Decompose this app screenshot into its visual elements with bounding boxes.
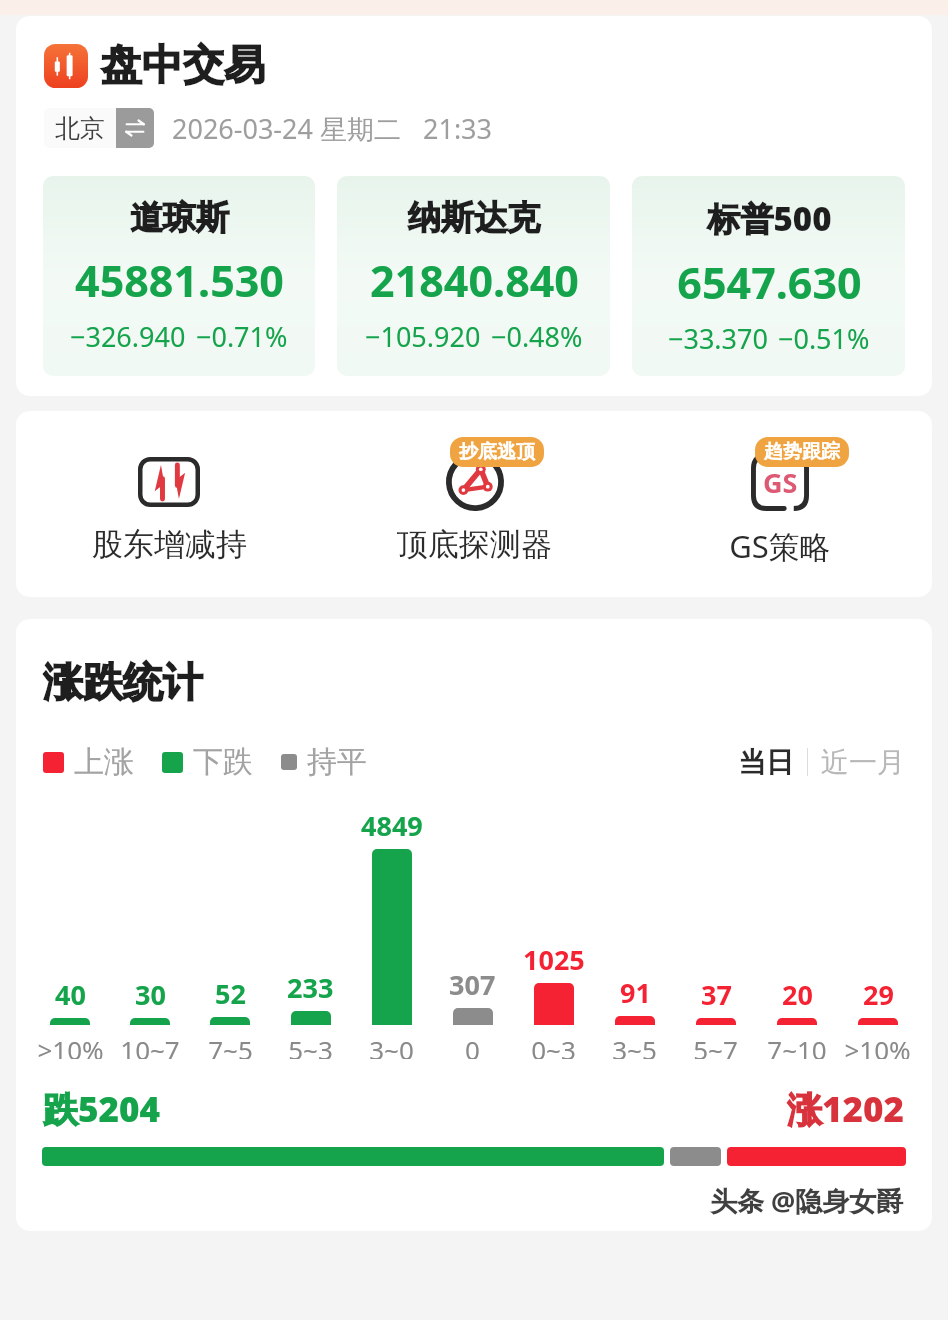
staticText: 5~3: [288, 1032, 333, 1059]
button[interactable]: 股东增减持: [16, 437, 322, 564]
staticText: 近一月: [821, 745, 905, 780]
staticText: 上涨: [74, 743, 134, 781]
button[interactable]: 标普500: [632, 176, 905, 376]
button[interactable]: 顶底探测器: [322, 437, 627, 564]
staticText: 北京: [55, 113, 105, 144]
staticText: GS: [763, 464, 798, 501]
staticText: 0: [465, 1032, 480, 1059]
staticText: 233: [287, 969, 334, 1006]
button[interactable]: 29: [837, 807, 918, 1059]
button[interactable]: 37: [675, 807, 756, 1059]
staticText: 道琼斯: [130, 197, 229, 239]
staticText: 30: [135, 976, 166, 1013]
button[interactable]: GS策略: [627, 437, 932, 567]
staticText: 6547.630: [677, 253, 862, 312]
staticText: 下跌: [193, 743, 253, 781]
button[interactable]: 近一月: [821, 745, 905, 780]
staticText: 37: [701, 976, 732, 1013]
staticText: 趋势跟踪: [764, 440, 840, 464]
other: Switch city: [124, 117, 146, 139]
button[interactable]: 盘中交易: [44, 40, 932, 92]
staticText: 盘中交易: [101, 40, 265, 92]
staticText: 3~5: [612, 1032, 657, 1059]
staticText: −0.71%: [196, 318, 288, 355]
other: 顶底探测器: [446, 453, 504, 511]
staticText: 3~0: [369, 1032, 414, 1059]
staticText: 标普500: [707, 196, 832, 241]
button[interactable]: 307: [432, 807, 513, 1059]
staticText: 21:33: [423, 110, 493, 147]
staticText: 持平: [307, 743, 367, 781]
staticText: −0.48%: [491, 318, 583, 355]
button[interactable]: 40: [30, 807, 110, 1059]
staticText: −33.370: [668, 320, 768, 357]
button[interactable]: 91: [594, 807, 675, 1059]
staticText: −326.940: [70, 318, 186, 355]
staticText: 7~10: [767, 1032, 827, 1059]
button[interactable]: 52: [190, 807, 270, 1059]
staticText: 头条 @隐身女爵: [710, 1182, 904, 1219]
other: GS策略: [751, 453, 809, 511]
staticText: 2026-03-24 星期二: [172, 110, 401, 147]
staticText: 40: [55, 976, 86, 1013]
staticText: −105.920: [365, 318, 481, 355]
staticText: 21840.840: [370, 251, 579, 310]
staticText: 45881.530: [75, 251, 284, 310]
staticText: >10%: [844, 1032, 911, 1059]
button[interactable]: 当日: [738, 745, 794, 780]
staticText: 股东增减持: [92, 525, 247, 564]
staticText: 4849: [361, 807, 423, 844]
staticText: 20: [782, 976, 813, 1013]
button[interactable]: 30: [110, 807, 190, 1059]
button[interactable]: 北京: [44, 108, 154, 148]
button[interactable]: 233: [270, 807, 351, 1059]
staticText: 307: [449, 966, 496, 1003]
button[interactable]: 4849: [351, 807, 432, 1059]
staticText: 91: [620, 974, 651, 1011]
staticText: 5~7: [693, 1032, 738, 1059]
staticText: GS策略: [729, 525, 831, 567]
staticText: 当日: [738, 745, 794, 780]
staticText: 跌5204: [43, 1085, 161, 1133]
staticText: 顶底探测器: [397, 525, 552, 564]
button[interactable]: 道琼斯: [43, 176, 315, 376]
staticText: 52: [215, 975, 246, 1012]
staticText: 1025: [523, 941, 585, 978]
staticText: 涨1202: [787, 1085, 905, 1133]
staticText: 10~7: [120, 1032, 180, 1059]
button[interactable]: 20: [756, 807, 837, 1059]
staticText: >10%: [37, 1032, 104, 1059]
staticText: −0.51%: [778, 320, 870, 357]
staticText: 29: [863, 976, 894, 1013]
staticText: 0~3: [531, 1032, 576, 1059]
other: 股东增减持: [138, 457, 200, 507]
button[interactable]: 纳斯达克: [337, 176, 610, 376]
button[interactable]: 1025: [513, 807, 594, 1059]
staticText: 纳斯达克: [408, 197, 540, 239]
staticText: 7~5: [208, 1032, 253, 1059]
staticText: 涨跌统计: [43, 657, 203, 707]
staticText: 抄底逃顶: [459, 440, 535, 464]
